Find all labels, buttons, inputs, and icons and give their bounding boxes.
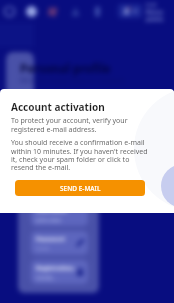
staticText: To protect your account, verify your reg… [11, 116, 150, 134]
staticText: Username [36, 206, 67, 214]
staticText: Personal profile [20, 61, 111, 77]
staticText: EUR [146, 1, 157, 8]
staticText: 05/08... [36, 274, 57, 282]
staticText: john.doe [36, 216, 61, 224]
staticText: Registration... [36, 264, 78, 272]
staticText: You should receive a confirmation e-mail… [11, 138, 150, 172]
staticText: Password [36, 235, 65, 243]
staticText: Fill in the empty fields to complete [20, 76, 125, 85]
button[interactable]: Account [118, 4, 142, 18]
staticText: •••••• [36, 245, 50, 253]
staticText: SEND E-MAIL [60, 184, 101, 193]
button[interactable]: SEND E-MAIL [15, 180, 145, 196]
staticText: Account activation [11, 100, 105, 114]
staticText: Bonus points [146, 8, 174, 22]
